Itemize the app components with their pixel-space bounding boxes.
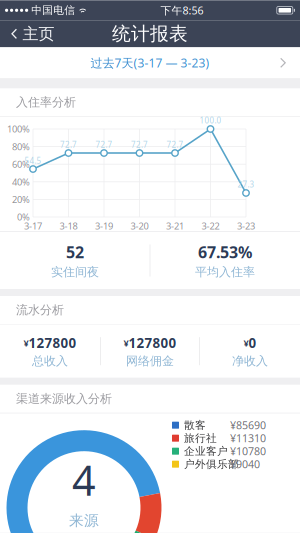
- staticText: ¥: [123, 337, 128, 349]
- staticText: 100.0: [199, 115, 221, 126]
- staticText: ¥11310: [230, 431, 266, 445]
- staticText: 实住间夜: [51, 265, 99, 279]
- button[interactable]: 主页: [0, 19, 62, 49]
- staticText: 72.7: [131, 139, 148, 150]
- staticText: 20%: [12, 193, 30, 206]
- staticText: 企业客户: [184, 445, 228, 458]
- staticText: 0%: [17, 211, 30, 223]
- staticText: 0: [248, 334, 256, 352]
- staticText: 52: [66, 241, 84, 263]
- staticText: 旅行社: [184, 432, 217, 445]
- staticText: ¥85690: [230, 418, 266, 432]
- staticText: 户外俱乐部: [184, 458, 239, 471]
- button[interactable]: 过去7天(3-17 — 3-23): [0, 47, 300, 78]
- staticText: 来源: [69, 512, 99, 530]
- staticText: 80%: [12, 140, 30, 153]
- staticText: 60%: [12, 158, 30, 170]
- staticText: 散客: [184, 419, 206, 432]
- staticText: 渠道来源收入分析: [16, 391, 112, 406]
- staticText: 72.7: [60, 139, 77, 150]
- staticText: 54.5: [24, 155, 41, 166]
- staticText: 4: [72, 452, 96, 507]
- staticText: 3-17: [24, 220, 42, 232]
- staticText: 3-18: [59, 220, 77, 232]
- staticText: 3-19: [95, 220, 113, 232]
- staticText: 下午8:56: [160, 3, 203, 17]
- staticText: 100%: [7, 123, 30, 135]
- staticText: ¥: [243, 337, 248, 349]
- staticText: 40%: [12, 176, 30, 188]
- staticText: 3-23: [237, 220, 255, 232]
- staticText: 127800: [28, 334, 76, 352]
- staticText: 72.7: [166, 139, 183, 150]
- staticText: 净收入: [232, 354, 268, 368]
- staticText: 3-20: [130, 220, 148, 232]
- staticText: 主页: [22, 24, 54, 44]
- staticText: ¥10780: [230, 444, 266, 458]
- staticText: 总收入: [32, 354, 68, 368]
- staticText: 3-21: [166, 220, 184, 232]
- staticText: 网络佣金: [126, 354, 174, 368]
- staticText: 127800: [128, 334, 176, 352]
- staticText: 流水分析: [16, 303, 64, 317]
- staticText: 67.53%: [198, 241, 252, 263]
- staticText: ¥: [23, 337, 28, 349]
- staticText: 入住率分析: [16, 95, 76, 110]
- staticText: 中国电信: [31, 4, 75, 17]
- staticText: 3-22: [201, 220, 219, 232]
- staticText: ¥9040: [230, 457, 260, 471]
- staticText: 过去7天(3-17 — 3-23): [90, 55, 209, 71]
- staticText: 平均入住率: [195, 265, 255, 279]
- staticText: 统计报表: [112, 22, 188, 45]
- staticText: 27.3: [237, 179, 254, 190]
- staticText: 72.7: [95, 139, 112, 150]
